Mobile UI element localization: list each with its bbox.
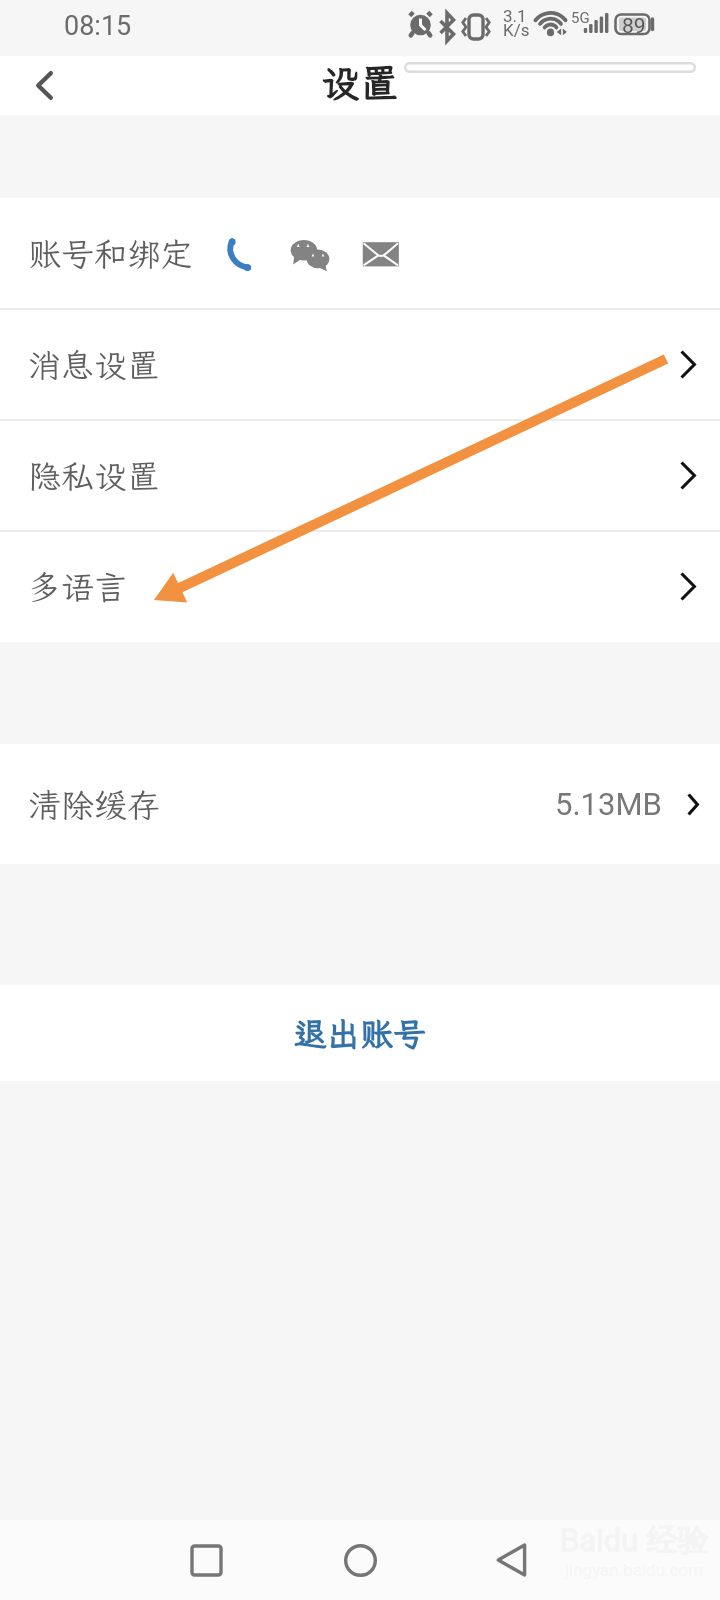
staticText: 89: [622, 14, 646, 39]
button[interactable]: 隐私设置: [0, 420, 720, 531]
button[interactable]: 清除缓存: [0, 744, 720, 864]
staticText: 隐私设置: [28, 454, 160, 497]
button[interactable]: Home: [300, 1520, 420, 1600]
staticText: 多语言: [28, 565, 127, 608]
staticText: 3.1: [503, 6, 527, 26]
button[interactable]: 消息设置: [0, 309, 720, 420]
button[interactable]: 多语言: [0, 531, 720, 642]
staticText: K/s: [503, 20, 530, 40]
staticText: 设置: [321, 57, 400, 108]
button[interactable]: 退出账号: [0, 985, 720, 1081]
button[interactable]: Back: [452, 1520, 572, 1600]
staticText: 5G: [571, 9, 590, 27]
staticText: 清除缓存: [28, 783, 160, 826]
button[interactable]: Back: [0, 56, 88, 115]
button[interactable]: Recent apps: [146, 1520, 266, 1600]
staticText: 退出账号: [294, 1012, 426, 1055]
staticText: Baidu 经验: [560, 1521, 708, 1560]
button[interactable]: 账号和绑定: [0, 198, 720, 309]
staticText: 5.13MB: [555, 786, 662, 822]
staticText: 08:15: [64, 10, 132, 42]
staticText: 账号和绑定: [28, 232, 193, 275]
staticText: 消息设置: [28, 343, 160, 386]
